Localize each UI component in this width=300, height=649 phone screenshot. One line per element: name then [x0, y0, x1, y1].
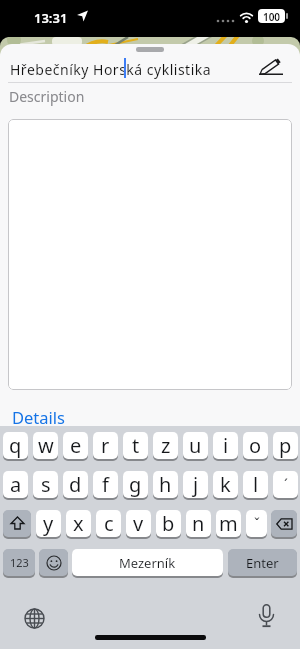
- staticText: o: [249, 432, 262, 459]
- staticText: p: [279, 432, 292, 459]
- staticText: t: [132, 432, 140, 459]
- staticText: ´: [284, 475, 288, 494]
- button[interactable]: j: [183, 471, 208, 498]
- button[interactable]: [39, 549, 68, 576]
- button[interactable]: d: [63, 471, 88, 498]
- staticText: h: [159, 471, 172, 498]
- staticText: j: [193, 471, 199, 498]
- button[interactable]: o: [243, 432, 268, 459]
- staticText: Mezerník: [119, 554, 176, 572]
- staticText: e: [70, 432, 82, 459]
- staticText: s: [41, 471, 51, 498]
- staticText: 100: [258, 10, 285, 22]
- button[interactable]: t: [123, 432, 148, 459]
- button[interactable]: [3, 510, 31, 537]
- staticText: 123: [10, 555, 29, 570]
- staticText: Description: [9, 87, 85, 106]
- staticText: v: [133, 510, 144, 537]
- button[interactable]: z: [153, 432, 178, 459]
- staticText: g: [129, 471, 142, 498]
- staticText: r: [101, 432, 110, 459]
- staticText: f: [102, 471, 109, 498]
- button[interactable]: g: [123, 471, 148, 498]
- staticText: ˇ: [254, 514, 260, 533]
- staticText: n: [192, 510, 205, 537]
- button[interactable]: f: [93, 471, 118, 498]
- button[interactable]: c: [96, 510, 121, 537]
- button[interactable]: e: [63, 432, 88, 459]
- button[interactable]: a: [3, 471, 28, 498]
- button[interactable]: [24, 608, 45, 629]
- button[interactable]: [8, 119, 292, 390]
- button[interactable]: [257, 604, 276, 629]
- button[interactable]: ˇ: [246, 510, 267, 537]
- button[interactable]: [256, 57, 288, 79]
- staticText: k: [220, 471, 231, 498]
- button[interactable]: Mezerník: [72, 549, 223, 576]
- button[interactable]: ´: [273, 471, 298, 498]
- button[interactable]: i: [213, 432, 238, 459]
- button[interactable]: Enter: [228, 549, 297, 576]
- staticText: w: [38, 432, 54, 459]
- staticText: d: [69, 471, 82, 498]
- button[interactable]: w: [33, 432, 58, 459]
- button[interactable]: 123: [3, 549, 35, 576]
- staticText: Enter: [246, 554, 279, 572]
- staticText: y: [43, 510, 54, 537]
- staticText: 13:31: [34, 9, 68, 27]
- button[interactable]: k: [213, 471, 238, 498]
- button[interactable]: x: [66, 510, 91, 537]
- staticText: c: [104, 510, 114, 537]
- button[interactable]: [271, 510, 297, 537]
- button[interactable]: n: [186, 510, 211, 537]
- button[interactable]: b: [156, 510, 181, 537]
- staticText: b: [162, 510, 175, 537]
- button[interactable]: l: [243, 471, 268, 498]
- staticText: z: [161, 432, 171, 459]
- button[interactable]: v: [126, 510, 151, 537]
- staticText: u: [189, 432, 202, 459]
- button[interactable]: q: [3, 432, 28, 459]
- staticText: l: [253, 471, 259, 498]
- staticText: a: [10, 471, 22, 498]
- staticText: i: [223, 432, 229, 459]
- button[interactable]: Hřebečníky Horská cyklistika: [10, 60, 212, 79]
- button[interactable]: r: [93, 432, 118, 459]
- button[interactable]: s: [33, 471, 58, 498]
- button[interactable]: p: [273, 432, 298, 459]
- button[interactable]: h: [153, 471, 178, 498]
- button[interactable]: Details: [12, 406, 65, 426]
- button[interactable]: y: [36, 510, 61, 537]
- staticText: q: [9, 432, 22, 459]
- staticText: m: [219, 510, 238, 537]
- button[interactable]: u: [183, 432, 208, 459]
- button[interactable]: m: [216, 510, 241, 537]
- staticText: x: [73, 510, 84, 537]
